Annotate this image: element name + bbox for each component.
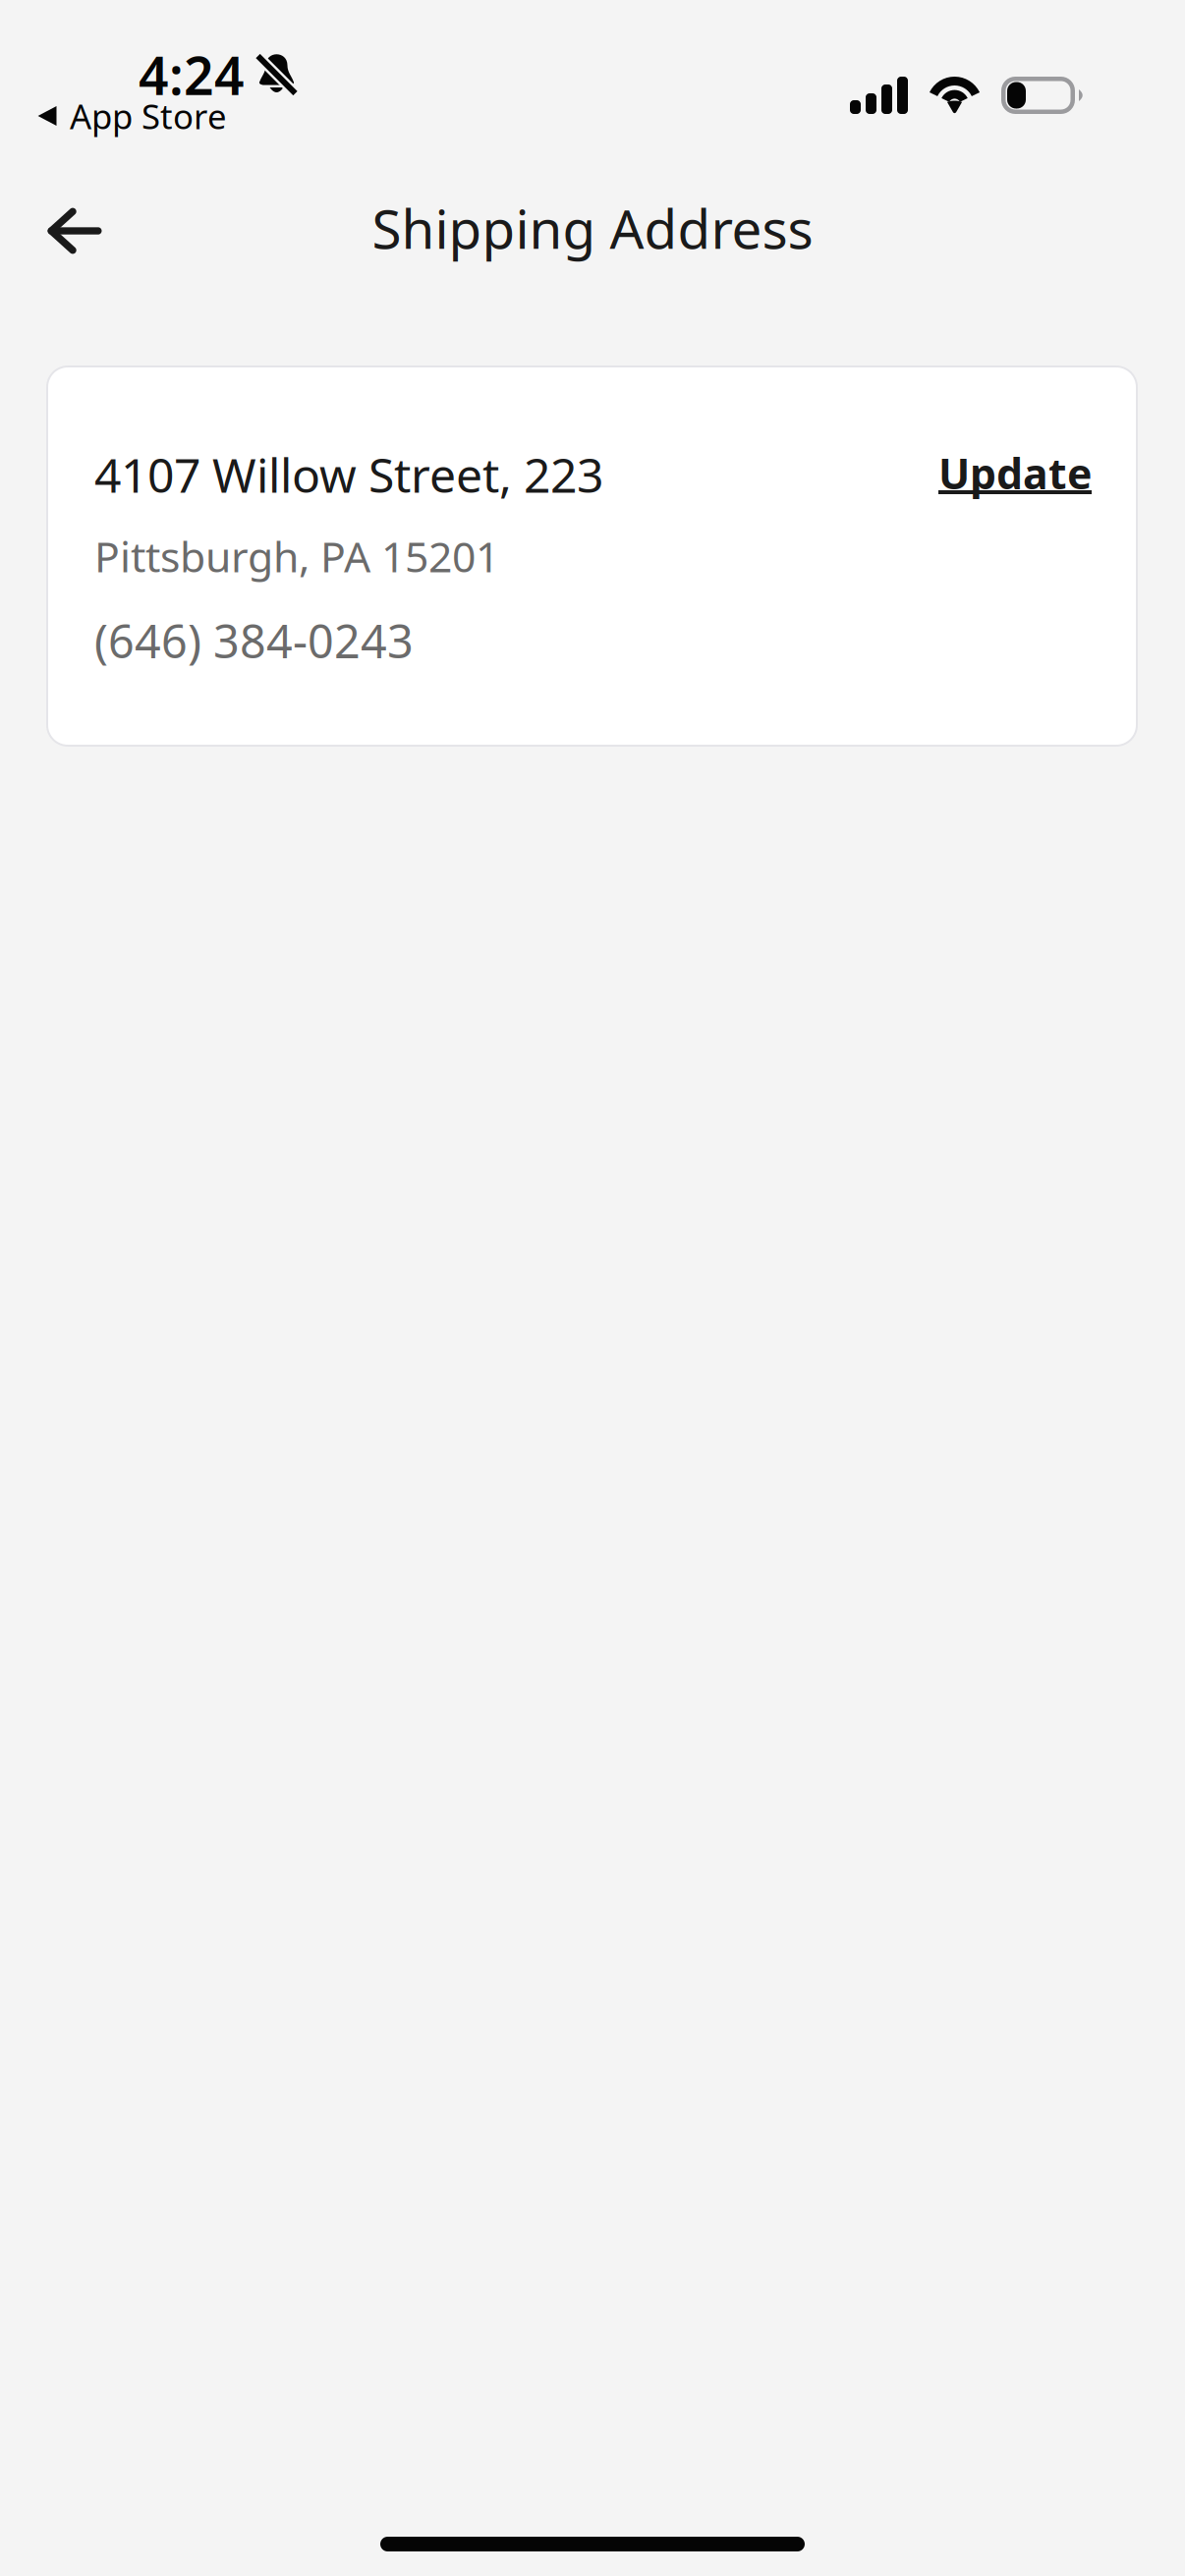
staticText: Update [938,445,1092,501]
staticText: Pittsburgh, PA 15201 [94,528,499,584]
button[interactable]: Back [21,177,129,285]
staticText: Shipping Address [372,192,813,264]
staticText: (646) 384-0243 [94,610,414,671]
button[interactable]: Update [936,454,1092,496]
staticText: 4:24 [139,40,245,109]
staticText: 4107 Willow Street, 223 [94,443,603,506]
staticText: App Store [70,93,227,139]
